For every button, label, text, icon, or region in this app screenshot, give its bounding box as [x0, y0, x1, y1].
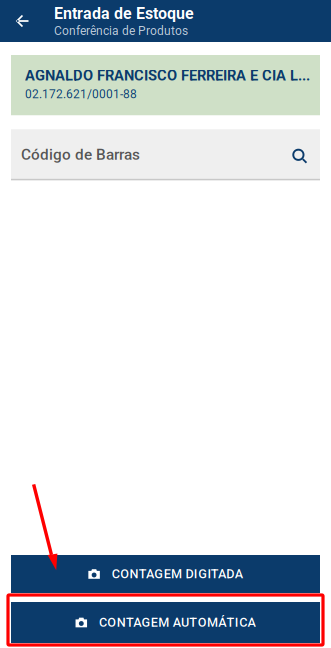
staticText: CONTAGEM DIGITADA: [112, 567, 243, 581]
button[interactable]: CONTAGEM DIGITADA: [11, 555, 320, 593]
staticText: CONTAGEM AUTOMÁTICA: [99, 615, 255, 630]
button[interactable]: Voltar: [0, 0, 44, 42]
staticText: AGNALDO FRANCISCO FERREIRA E CIA L...: [25, 67, 310, 84]
staticText: Conferência de Produtos: [54, 24, 188, 38]
button[interactable]: CONTAGEM AUTOMÁTICA: [11, 602, 320, 643]
staticText: Entrada de Estoque: [54, 4, 194, 23]
staticText: 02.172.621/0001-88: [25, 87, 137, 101]
staticText: Código de Barras: [21, 145, 140, 163]
button[interactable]: Código de Barras: [11, 129, 320, 180]
